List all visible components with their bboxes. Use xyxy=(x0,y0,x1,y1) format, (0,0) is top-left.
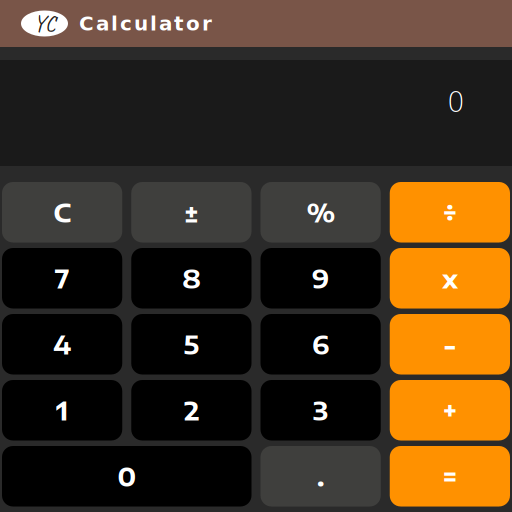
button[interactable]: 0 xyxy=(2,446,251,506)
staticText: 0 xyxy=(117,460,136,492)
staticText: 7 xyxy=(55,262,70,294)
staticText: 4 xyxy=(53,328,71,360)
staticText: 1 xyxy=(56,394,69,426)
button[interactable]: 8 xyxy=(131,248,251,308)
staticText: ± xyxy=(184,196,199,228)
staticText: . xyxy=(317,460,325,492)
button[interactable]: 2 xyxy=(131,380,251,440)
staticText: + xyxy=(442,394,457,426)
staticText: YC xyxy=(33,9,55,38)
button[interactable]: 7 xyxy=(2,248,122,308)
staticText: ÷ xyxy=(442,196,457,228)
staticText: = xyxy=(442,460,457,492)
button[interactable]: 5 xyxy=(131,314,251,374)
staticText: 2 xyxy=(184,394,199,426)
button[interactable]: 3 xyxy=(260,380,381,440)
staticText: 5 xyxy=(183,328,199,360)
button[interactable]: % xyxy=(260,182,381,242)
button[interactable]: + xyxy=(390,380,510,440)
staticText: 6 xyxy=(312,328,330,360)
button[interactable]: 9 xyxy=(260,248,381,308)
staticText: 9 xyxy=(312,262,330,294)
button[interactable]: - xyxy=(390,314,510,374)
button[interactable]: 4 xyxy=(2,314,122,374)
button[interactable]: ± xyxy=(131,182,251,242)
button[interactable]: 1 xyxy=(2,380,122,440)
button[interactable]: = xyxy=(390,446,510,506)
button[interactable]: C xyxy=(2,182,122,242)
button[interactable]: ÷ xyxy=(390,182,510,242)
staticText: % xyxy=(306,196,335,228)
staticText: x xyxy=(442,262,458,294)
staticText: - xyxy=(443,328,457,360)
staticText: 0 xyxy=(447,86,465,119)
staticText: 8 xyxy=(182,262,201,294)
button[interactable]: YC xyxy=(0,0,512,47)
staticText: C a l c u l a t o r xyxy=(79,12,212,35)
staticText: 3 xyxy=(313,394,329,426)
button[interactable]: . xyxy=(260,446,381,506)
staticText: C xyxy=(53,196,71,228)
button[interactable]: x xyxy=(390,248,510,308)
button[interactable]: 6 xyxy=(260,314,381,374)
